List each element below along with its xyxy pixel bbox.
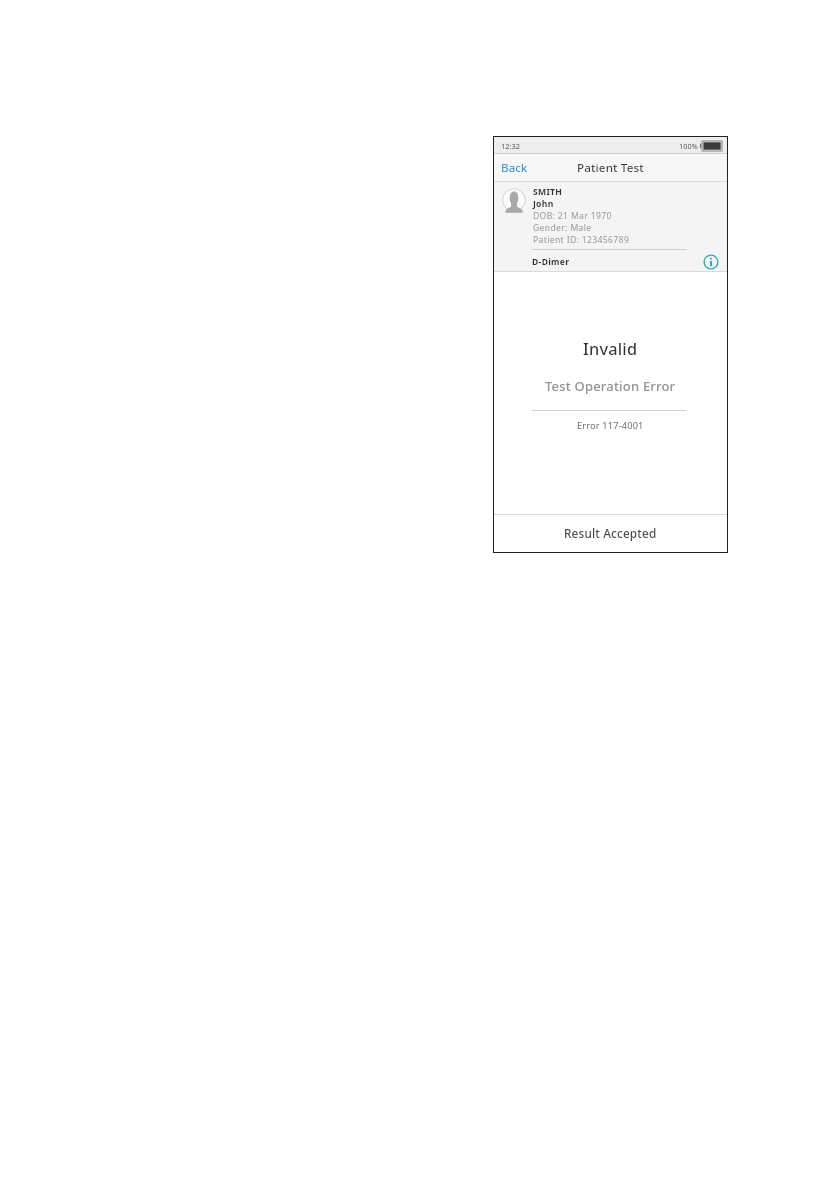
staticText: Test Operation Error [545,377,676,395]
staticText: Patient ID: 123456789 [533,234,630,246]
staticText: SMITH [533,186,563,198]
staticText: Result Accepted [564,525,657,541]
button[interactable]: Back [494,155,535,181]
staticText: Back [501,160,528,176]
staticText: D-Dimer [532,256,570,268]
button[interactable]: D-Dimer [494,251,727,272]
staticText: Gender: Male [533,222,592,234]
staticText: DOB: 21 Mar 1970 [533,210,612,222]
staticText: Invalid [583,338,638,360]
staticText: John [533,198,554,210]
staticText: Error 117-4001 [577,419,644,432]
button[interactable]: Result Accepted [494,514,727,552]
button[interactable]: Test information [701,252,720,271]
staticText: 12:32 [501,141,520,151]
staticText: 100% [679,141,698,151]
staticText: Patient Test [577,160,644,176]
